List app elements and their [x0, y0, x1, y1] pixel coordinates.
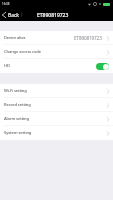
- button[interactable]: Record setting: [0, 98, 113, 112]
- button[interactable]: Change access code: [0, 45, 113, 59]
- staticText: 16:38: [2, 2, 10, 6]
- button[interactable]: System setting: [0, 126, 113, 140]
- staticText: Device alias: [4, 35, 26, 41]
- staticText: Record setting: [4, 102, 31, 108]
- other: HD toggle on: [96, 63, 109, 70]
- button[interactable]: Wi-Fi setting: [0, 84, 113, 98]
- staticText: Back: [8, 12, 19, 19]
- staticText: ET890819723: [37, 12, 69, 19]
- button[interactable]: HD: [0, 59, 113, 73]
- button[interactable]: Alarm setting: [0, 112, 113, 126]
- staticText: Change access code: [4, 49, 42, 55]
- staticText: Alarm setting: [4, 116, 29, 122]
- button[interactable]: Back: [0, 9, 22, 21]
- staticText: HD: [4, 63, 10, 69]
- staticText: Wi-Fi setting: [4, 88, 27, 94]
- staticText: System setting: [4, 130, 32, 136]
- staticText: ET890819723: [74, 35, 102, 41]
- button[interactable]: Device alias: [0, 31, 113, 45]
